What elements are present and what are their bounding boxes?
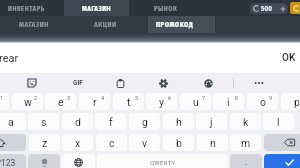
staticText: i	[227, 96, 230, 108]
button[interactable]: 500	[250, 3, 288, 14]
staticText: ?123	[0, 158, 16, 168]
button[interactable]: Change language	[62, 154, 95, 168]
button[interactable]: z	[29, 134, 60, 151]
staticText: f	[109, 116, 113, 128]
staticText: z	[42, 137, 48, 149]
button[interactable]: Space	[97, 154, 228, 168]
staticText: y	[159, 96, 164, 108]
staticText: e	[58, 96, 64, 108]
staticText: o	[260, 96, 266, 108]
button[interactable]: j	[196, 113, 227, 130]
staticText: МАГАЗИН	[82, 4, 112, 13]
button[interactable]: a	[0, 113, 26, 130]
staticText: ПРОМОКОД	[156, 20, 194, 29]
button[interactable]: Add currency	[278, 3, 288, 14]
staticText: b	[176, 137, 182, 149]
button[interactable]: МАГАЗИН	[3, 16, 65, 33]
staticText: k	[243, 116, 249, 128]
staticText: 6	[168, 95, 172, 101]
staticText: a	[8, 116, 14, 128]
button[interactable]: АКЦИИ	[74, 16, 136, 33]
button[interactable]: ИНВЕНТАРЬ	[0, 0, 57, 16]
button[interactable]: q	[0, 93, 9, 110]
staticText: j	[210, 116, 213, 128]
staticText: РЫНОК	[154, 4, 178, 13]
staticText: МАГАЗИН	[19, 20, 49, 29]
button[interactable]: Clipboard	[111, 73, 129, 93]
button[interactable]: Enter	[264, 154, 300, 168]
button[interactable]: w	[12, 93, 43, 110]
staticText: w	[24, 96, 32, 108]
staticText: x	[75, 137, 81, 149]
button[interactable]: f	[95, 113, 126, 130]
staticText: h	[176, 116, 182, 128]
staticText: g	[142, 116, 148, 128]
button[interactable]: OK	[282, 52, 296, 64]
staticText: m	[241, 137, 251, 149]
staticText: d	[75, 116, 81, 128]
button[interactable]: РЫНОК	[135, 0, 197, 16]
staticText: 9	[269, 95, 273, 101]
staticText: n	[210, 137, 216, 149]
button[interactable]: More options	[250, 73, 268, 93]
button[interactable]: Emoji	[28, 154, 60, 168]
staticText: .	[245, 157, 248, 168]
button[interactable]: y	[146, 93, 177, 110]
button[interactable]: GIF	[69, 73, 87, 93]
staticText: 5	[135, 95, 139, 101]
staticText: r	[93, 96, 97, 108]
staticText: 1	[0, 95, 4, 101]
staticText: QWERTY	[150, 159, 176, 166]
button[interactable]: p	[281, 93, 300, 110]
button[interactable]: c	[96, 134, 127, 151]
staticText: ИНВЕНТАРЬ	[8, 4, 45, 13]
button[interactable]: Settings	[154, 73, 172, 93]
button[interactable]: k	[230, 113, 261, 130]
button[interactable]: Shift	[0, 134, 26, 151]
button[interactable]: o	[247, 93, 278, 110]
button[interactable]: x	[62, 134, 93, 151]
staticText: s	[41, 116, 47, 128]
button[interactable]: ПРОМОКОД	[148, 16, 215, 33]
staticText: 7	[202, 95, 206, 101]
staticText: t	[127, 96, 131, 108]
staticText: v	[142, 137, 148, 149]
button[interactable]: Stickers	[23, 73, 41, 93]
button[interactable]: n	[197, 134, 228, 151]
staticText: c	[109, 137, 115, 149]
button[interactable]: u	[180, 93, 211, 110]
staticText: GIF	[73, 79, 83, 87]
staticText: l	[277, 116, 280, 128]
button[interactable]: МАГАЗИН	[64, 0, 129, 16]
staticText: 8	[235, 95, 239, 101]
button[interactable]: e	[45, 93, 76, 110]
button[interactable]: h	[163, 113, 194, 130]
button[interactable]: v	[129, 134, 160, 151]
button[interactable]: r	[79, 93, 110, 110]
staticText: 4	[101, 95, 105, 101]
button[interactable]: s	[28, 113, 59, 130]
staticText: АКЦИИ	[94, 20, 117, 29]
button[interactable]: b	[163, 134, 194, 151]
button[interactable]: l	[263, 113, 294, 130]
button[interactable]: Symbols	[0, 154, 26, 168]
button[interactable]: rear	[0, 52, 19, 65]
button[interactable]: g	[129, 113, 160, 130]
staticText: u	[193, 96, 199, 108]
button[interactable]: d	[62, 113, 93, 130]
button[interactable]: Backspace	[264, 134, 300, 151]
button[interactable]: m	[230, 134, 261, 151]
staticText: p	[294, 96, 300, 108]
button[interactable]: t	[113, 93, 144, 110]
staticText: 500	[261, 4, 273, 13]
staticText: 2	[34, 95, 38, 101]
button[interactable]: Buy currency	[290, 2, 300, 14]
button[interactable]: Period	[230, 154, 262, 168]
staticText: 3	[67, 95, 71, 101]
button[interactable]: Themes	[199, 73, 217, 93]
button[interactable]: i	[213, 93, 244, 110]
